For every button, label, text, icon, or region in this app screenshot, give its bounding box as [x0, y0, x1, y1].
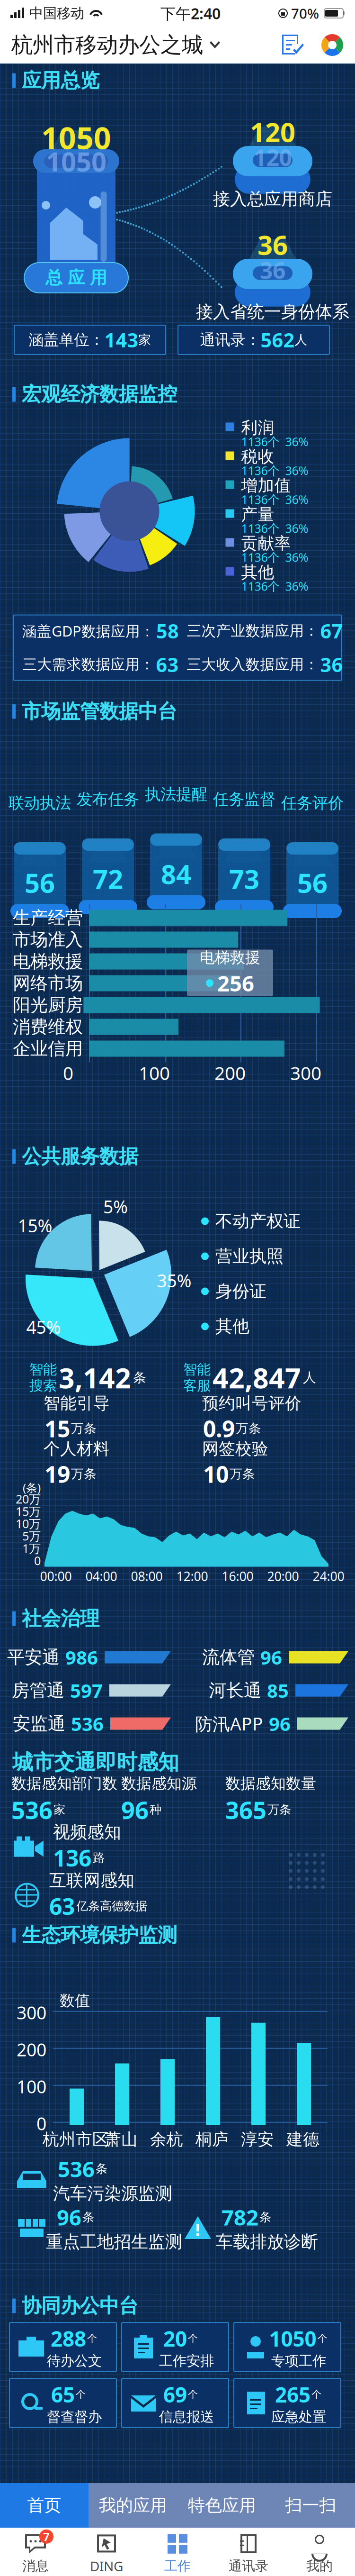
staticText: 120: [253, 142, 292, 172]
staticText: 三大需求数据应用：: [22, 656, 155, 673]
staticText: 20万: [16, 1491, 41, 1507]
staticText: 家: [138, 332, 151, 348]
staticText: 5%: [103, 1195, 128, 1218]
staticText: 通讯录：: [200, 330, 261, 349]
staticText: 生产经营: [13, 907, 83, 929]
staticText: 其他: [215, 1316, 249, 1337]
staticText: 万条: [230, 1466, 255, 1482]
staticText: 个: [188, 2388, 198, 2401]
staticText: 136: [53, 1843, 91, 1873]
staticText: 首页: [27, 2495, 61, 2516]
staticText: 10: [203, 1459, 229, 1489]
staticText: 互联网感知: [49, 1870, 134, 1891]
staticText: 数据感知源: [121, 1774, 197, 1793]
staticText: 72: [93, 861, 123, 896]
staticText: 信息报送: [159, 2408, 214, 2425]
staticText: 家: [53, 1802, 65, 1817]
button[interactable]: 通讯录：: [178, 325, 329, 355]
staticText: 执法提醒: [145, 785, 207, 804]
staticText: 企业信用: [13, 1038, 83, 1060]
staticText: 56: [297, 865, 328, 900]
staticText: 消息: [22, 2558, 49, 2574]
staticText: 杭州市移动办公之城: [11, 32, 203, 58]
staticText: 536: [58, 2155, 95, 2183]
staticText: 1136个: [241, 549, 280, 565]
button[interactable]: 7: [0, 2528, 71, 2576]
button[interactable]: 扫一扫: [266, 2483, 355, 2528]
staticText: 20:00: [267, 1568, 299, 1585]
staticText: 42,847: [213, 1359, 301, 1396]
button[interactable]: 1050: [234, 2322, 341, 2372]
staticText: 桐庐: [195, 2129, 229, 2150]
staticText: 房管通: [12, 1680, 64, 1701]
button[interactable]: 288: [9, 2322, 116, 2372]
staticText: 智能: [183, 1361, 211, 1378]
staticText: 16:00: [222, 1568, 253, 1585]
button[interactable]: 首页: [0, 2483, 89, 2528]
staticText: 车载排放诊断: [216, 2231, 318, 2252]
staticText: 0: [34, 1553, 41, 1568]
staticText: 536: [71, 1711, 104, 1736]
staticText: 0: [63, 1061, 73, 1085]
staticText: 建德: [286, 2129, 319, 2150]
staticText: 1050: [269, 2325, 316, 2352]
staticText: 1万: [22, 1540, 41, 1556]
staticText: 1050: [41, 117, 111, 158]
staticText: 数据感知部门数: [11, 1774, 117, 1793]
staticText: 亿条高德数据: [76, 1899, 147, 1913]
staticText: 条: [96, 2161, 107, 2176]
staticText: 三次产业数据应用：: [187, 622, 319, 640]
staticText: 城市交通即时感知: [12, 1749, 179, 1775]
staticText: 个: [76, 2388, 86, 2401]
staticText: 36%: [285, 434, 308, 449]
staticText: 96: [121, 1794, 149, 1826]
button[interactable]: 265: [234, 2378, 341, 2428]
button[interactable]: 69: [122, 2378, 229, 2428]
staticText: 市场监管数据中台: [22, 699, 177, 723]
staticText: 20: [163, 2325, 187, 2352]
staticText: 客服: [183, 1377, 211, 1394]
staticText: 1136个: [241, 462, 280, 478]
staticText: 督查督办: [47, 2408, 102, 2425]
button[interactable]: 特色应用: [177, 2483, 266, 2528]
button[interactable]: 个人中心: [321, 34, 344, 56]
staticText: 58: [156, 618, 179, 644]
staticText: 288: [51, 2325, 86, 2352]
staticText: 36: [260, 255, 285, 285]
staticText: 63: [156, 651, 179, 677]
staticText: 网签校验: [202, 1439, 268, 1459]
button[interactable]: 65: [9, 2378, 116, 2428]
staticText: 73: [229, 861, 259, 896]
staticText: 条: [133, 1369, 146, 1386]
button[interactable]: DING: [71, 2528, 142, 2576]
staticText: 数据感知数量: [225, 1774, 316, 1793]
staticText: 100: [17, 2075, 46, 2098]
staticText: 淳安: [241, 2129, 274, 2150]
button[interactable]: 我的应用: [89, 2483, 177, 2528]
staticText: 利润: [241, 418, 274, 438]
staticText: 智能引导: [44, 1393, 110, 1413]
button[interactable]: 20: [122, 2322, 229, 2372]
button[interactable]: 杭州市移动办公之城: [11, 32, 221, 58]
staticText: 流体管: [202, 1646, 255, 1668]
staticText: 市场准入: [13, 929, 83, 951]
staticText: 7: [43, 2529, 50, 2544]
staticText: 接入总应用商店: [213, 189, 332, 210]
staticText: 条: [82, 2210, 94, 2225]
button[interactable]: 待办事项: [281, 34, 305, 56]
staticText: 通讯录: [229, 2558, 268, 2574]
staticText: 接入省统一身份体系: [196, 301, 349, 322]
staticText: 万条: [71, 1421, 97, 1436]
staticText: 100: [139, 1061, 170, 1085]
button[interactable]: 通讯录: [213, 2528, 284, 2576]
staticText: 三大收入数据应用：: [187, 656, 319, 673]
staticText: 联动执法: [9, 793, 71, 813]
staticText: 我的应用: [99, 2495, 167, 2516]
button[interactable]: 工作: [142, 2528, 213, 2576]
staticText: 782: [222, 2203, 258, 2231]
button[interactable]: 涵盖单位：: [14, 325, 166, 355]
button[interactable]: 我的: [284, 2528, 355, 2576]
staticText: 条: [259, 2210, 271, 2225]
staticText: 重点工地招生监测: [46, 2231, 182, 2252]
staticText: 24:00: [313, 1568, 344, 1585]
